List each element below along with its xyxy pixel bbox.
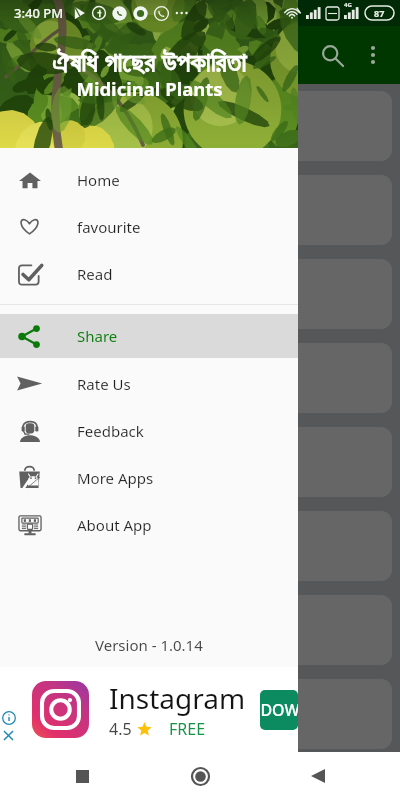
button[interactable]: Search — [310, 33, 354, 77]
staticText: Home — [77, 170, 120, 190]
button[interactable]: Share — [0, 314, 298, 358]
button[interactable]: More Apps — [0, 454, 298, 501]
staticText: More Apps — [77, 468, 154, 488]
button[interactable]: DOWNLOAD — [260, 690, 298, 730]
button[interactable]: Recents — [60, 754, 104, 798]
button[interactable]: favourite — [0, 203, 298, 250]
button[interactable] — [8, 763, 392, 800]
button[interactable] — [8, 511, 392, 581]
button[interactable] — [8, 343, 392, 413]
button[interactable] — [8, 91, 392, 161]
button[interactable]: Feedback — [0, 407, 298, 454]
staticText: 3:40 PM — [14, 4, 64, 22]
staticText: DOWNLOAD — [260, 699, 298, 721]
staticText: Midicinal Plants — [76, 76, 223, 101]
staticText: ঐষধি গাছের উপকারিতা — [52, 43, 246, 80]
staticText: Share — [77, 326, 118, 346]
button[interactable]: More options — [354, 36, 392, 74]
button[interactable]: Rate Us — [0, 360, 298, 407]
staticText: About App — [77, 515, 152, 535]
button[interactable] — [8, 679, 392, 749]
button[interactable]: About App — [0, 501, 298, 548]
staticText: 4G — [344, 1, 352, 9]
staticText: Read — [77, 264, 113, 284]
button[interactable] — [8, 259, 392, 329]
button[interactable] — [8, 595, 392, 665]
button[interactable]: Home — [0, 156, 298, 203]
button[interactable]: Home — [178, 754, 222, 798]
staticText: favourite — [77, 217, 141, 237]
staticText: Instagram — [109, 679, 246, 717]
button[interactable]: Read — [0, 250, 298, 297]
staticText: FREE — [169, 718, 206, 740]
button[interactable]: Back — [296, 754, 340, 798]
staticText: Feedback — [77, 421, 144, 441]
button[interactable] — [8, 427, 392, 497]
staticText: 4.5 — [109, 718, 132, 740]
button[interactable] — [8, 175, 392, 245]
staticText: Version - 1.0.14 — [95, 635, 203, 655]
staticText: Rate Us — [77, 374, 131, 394]
staticText: 87 — [374, 7, 385, 19]
